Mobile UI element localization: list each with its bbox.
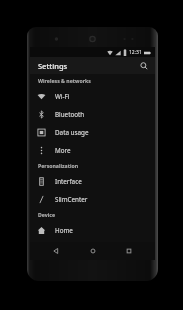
button[interactable]: Back	[45, 242, 67, 260]
button[interactable]: Recent apps	[118, 242, 140, 260]
staticText: SlimCenter	[55, 195, 88, 204]
staticText: Interface	[55, 177, 82, 186]
button[interactable]: Bluetooth	[30, 105, 155, 123]
button[interactable]: Interface	[30, 172, 155, 190]
staticText: Wi-Fi	[55, 92, 70, 101]
button[interactable]: Settings	[30, 57, 155, 74]
staticText: Settings	[38, 61, 68, 71]
staticText: More	[55, 146, 71, 155]
staticText: Wireless & networks	[38, 77, 91, 84]
button[interactable]: Wi-Fi	[30, 87, 155, 105]
button[interactable]: Data usage	[30, 123, 155, 141]
button[interactable]: SlimCenter	[30, 190, 155, 208]
button[interactable]: More	[30, 141, 155, 159]
staticText: Home	[55, 226, 73, 235]
staticText: Data usage	[55, 128, 89, 137]
staticText: Personalization	[38, 162, 79, 169]
button[interactable]: Home	[30, 221, 155, 239]
button[interactable]: Search	[137, 59, 150, 72]
staticText: 12:31	[129, 49, 142, 56]
staticText: Device	[38, 211, 56, 218]
button[interactable]: Home	[82, 242, 104, 260]
staticText: Bluetooth	[55, 110, 85, 119]
